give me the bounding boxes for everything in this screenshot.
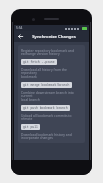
staticText: git merge bookmark/branch — [23, 83, 70, 87]
button[interactable]: git push bookmark branch — [21, 105, 70, 111]
button[interactable]: Back — [16, 32, 25, 41]
staticText: 5:54 — [16, 26, 23, 30]
staticText: git push bookmark branch — [23, 106, 68, 110]
staticText: Register repository bookmark and exchang… — [21, 48, 82, 56]
button[interactable]: git fetch --prune — [21, 59, 57, 65]
staticText: Synchronize Changes — [32, 34, 76, 40]
button[interactable]: git merge bookmark/branch — [21, 82, 72, 88]
staticText: Combine downstream branch into current l… — [21, 90, 82, 102]
staticText: Download all history from the repository… — [21, 67, 82, 79]
button[interactable]: git pull — [21, 124, 40, 130]
staticText: git fetch --prune — [23, 60, 55, 64]
staticText: Download bookmark history and incorporat… — [21, 132, 82, 140]
staticText: Upload all bookmark commits to remote — [21, 113, 82, 121]
staticText: git pull — [23, 125, 38, 129]
button[interactable]: Register repository bookmark and exchang… — [18, 45, 85, 143]
